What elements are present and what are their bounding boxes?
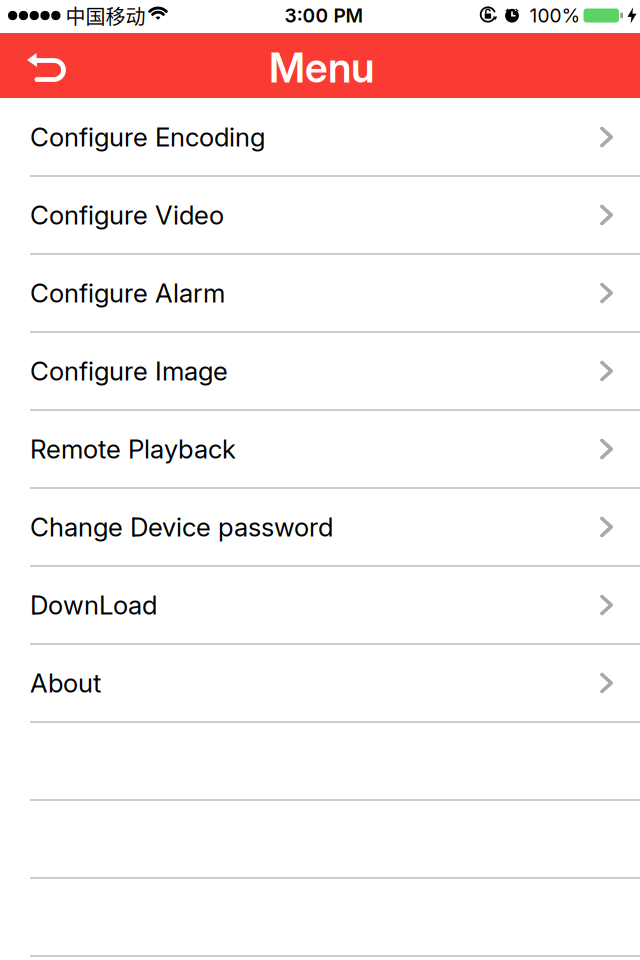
button[interactable]: DownLoad bbox=[0, 567, 640, 645]
button[interactable]: Configure Image bbox=[0, 333, 640, 411]
button[interactable]: Configure Encoding bbox=[0, 99, 640, 177]
staticText: Configure Encoding bbox=[30, 121, 265, 153]
button[interactable]: Back bbox=[21, 46, 65, 84]
button[interactable]: Change Device password bbox=[0, 489, 640, 567]
button[interactable]: Remote Playback bbox=[0, 411, 640, 489]
staticText: 100% bbox=[529, 4, 580, 27]
staticText: DownLoad bbox=[30, 589, 157, 621]
button[interactable]: Configure Video bbox=[0, 177, 640, 255]
staticText: About bbox=[30, 667, 101, 699]
staticText: 中国移动 bbox=[65, 1, 145, 30]
staticText: 3:00 PM bbox=[284, 4, 363, 27]
staticText: Menu bbox=[269, 43, 374, 92]
button[interactable]: Configure Alarm bbox=[0, 255, 640, 333]
staticText: Remote Playback bbox=[30, 433, 236, 465]
staticText: Configure Alarm bbox=[30, 277, 225, 309]
staticText: Change Device password bbox=[30, 511, 333, 543]
staticText: Configure Video bbox=[30, 199, 224, 231]
button[interactable]: About bbox=[0, 645, 640, 723]
staticText: Configure Image bbox=[30, 355, 228, 387]
